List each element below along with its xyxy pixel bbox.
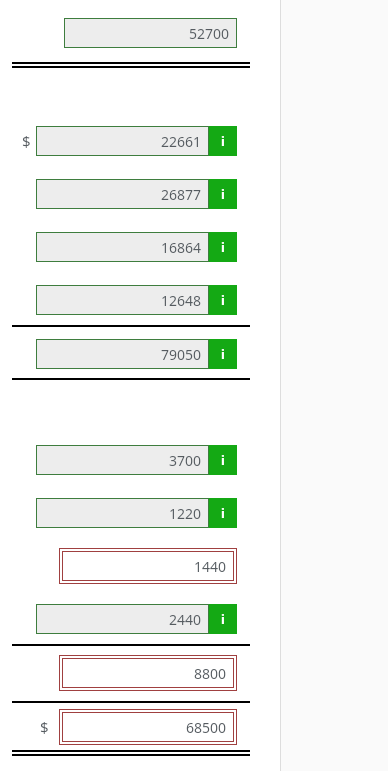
staticText: i (221, 504, 225, 522)
staticText: i (221, 345, 225, 363)
staticText: 12648 (160, 291, 201, 310)
button[interactable]: 1440 (62, 551, 234, 581)
button[interactable]: Information (209, 179, 237, 209)
button[interactable]: 52700 (64, 18, 237, 48)
staticText: 79050 (160, 345, 201, 364)
staticText: 8800 (193, 664, 226, 683)
button[interactable]: 3700 (36, 445, 209, 475)
staticText: 2440 (168, 610, 201, 629)
button[interactable]: 12648 (36, 285, 209, 315)
button[interactable]: 16864 (36, 232, 209, 262)
button[interactable]: 8800 (62, 658, 234, 688)
button[interactable]: 79050 (36, 339, 209, 369)
button[interactable]: Information (209, 339, 237, 369)
staticText: 16864 (160, 238, 201, 257)
button[interactable]: Information (209, 445, 237, 475)
staticText: 22661 (160, 132, 201, 151)
button[interactable]: 2440 (36, 604, 209, 634)
button[interactable]: 22661 (36, 126, 209, 156)
staticText: 52700 (188, 24, 229, 43)
button[interactable]: 26877 (36, 179, 209, 209)
staticText: i (221, 291, 225, 309)
staticText: 26877 (160, 185, 201, 204)
button[interactable]: Information (209, 232, 237, 262)
staticText: 1440 (193, 557, 226, 576)
staticText: i (221, 238, 225, 256)
staticText: 1220 (168, 504, 201, 523)
staticText: $ (22, 131, 31, 151)
staticText: i (221, 185, 225, 203)
staticText: $ (40, 717, 49, 737)
staticText: 3700 (168, 451, 201, 470)
staticText: 68500 (185, 718, 226, 737)
button[interactable]: Information (209, 285, 237, 315)
staticText: i (221, 451, 225, 469)
staticText: i (221, 610, 225, 628)
button[interactable]: 68500 (62, 712, 234, 742)
button[interactable]: Information (209, 498, 237, 528)
button[interactable]: Information (209, 126, 237, 156)
staticText: i (221, 132, 225, 150)
button[interactable]: Information (209, 604, 237, 634)
button[interactable]: 1220 (36, 498, 209, 528)
